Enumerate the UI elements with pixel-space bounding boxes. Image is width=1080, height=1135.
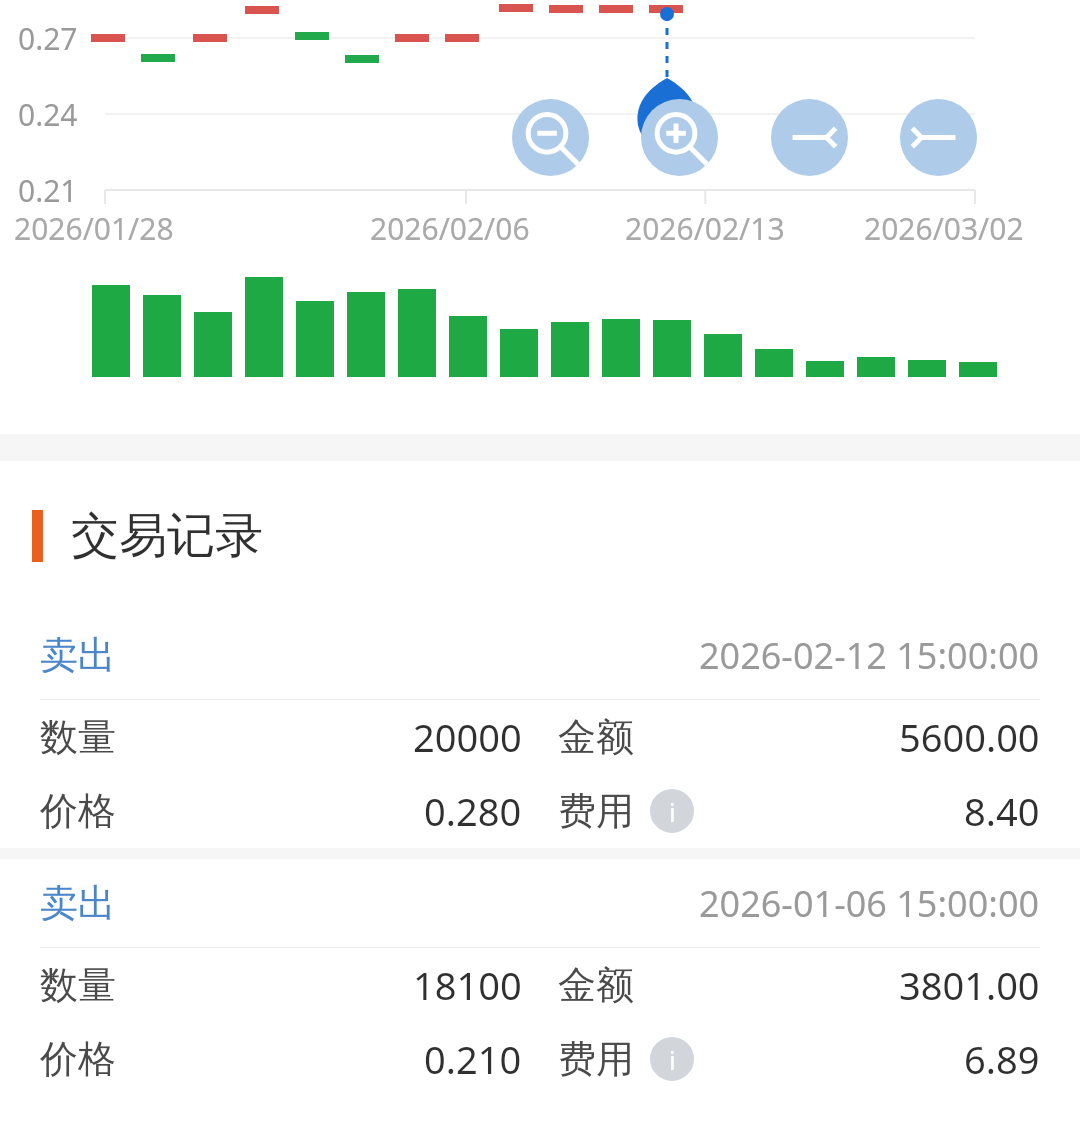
staticText: 数量 [40,713,116,761]
button[interactable]: Zoom out [512,99,589,176]
staticText: 20000 [413,711,522,763]
staticText: 费用 [558,787,634,835]
staticText: 0.280 [424,785,522,837]
button[interactable]: Fee info [650,1037,694,1081]
staticText: 5600.00 [899,711,1040,763]
other: Sell marker [630,78,704,152]
staticText: 0.21 [18,170,78,211]
button[interactable]: 卖出 [0,859,1080,1096]
staticText: 价格 [40,787,116,835]
staticText: i [669,1042,676,1077]
button[interactable]: Pan left [771,99,848,176]
staticText: 6.89 [964,1033,1040,1085]
staticText: 交易记录 [71,506,263,566]
button[interactable]: Zoom in [641,99,718,176]
staticText: 18100 [413,959,522,1011]
staticText: 0.27 [18,18,78,59]
staticText: 金额 [558,713,634,761]
staticText: 数量 [40,961,116,1009]
staticText: 金额 [558,961,634,1009]
staticText: 2026/01/28 [14,208,214,249]
staticText: 卖 [654,101,680,134]
staticText: 0.210 [424,1033,522,1085]
staticText: 费用 [558,1035,634,1083]
staticText: 价格 [40,1035,116,1083]
staticText: 3801.00 [899,959,1040,1011]
staticText: 8.40 [964,785,1040,837]
staticText: 卖出 [40,631,116,679]
staticText: 2026/03/02 [864,208,1064,249]
button[interactable]: Pan right [900,99,977,176]
staticText: 2026/02/06 [370,208,570,249]
staticText: 2026-02-12 15:00:00 [699,631,1040,680]
staticText: 卖出 [40,879,116,927]
button[interactable]: 卖出 [0,611,1080,848]
staticText: 2026/02/13 [625,208,825,249]
button[interactable]: Fee info [650,789,694,833]
staticText: 0.24 [18,94,78,135]
staticText: 2026-01-06 15:00:00 [699,879,1040,928]
staticText: i [669,794,676,829]
